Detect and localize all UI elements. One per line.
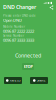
staticText: RATE US <box>10 79 20 82</box>
button[interactable]: SHARE <box>30 77 48 84</box>
staticText: Connected <box>15 52 41 59</box>
button[interactable]: RATE US <box>4 77 22 84</box>
staticText: Service Number <box>3 34 24 37</box>
staticText: Open DND <box>3 17 22 23</box>
staticText: Mobile Number <box>3 25 25 28</box>
staticText: Please enter DND code <box>3 14 36 17</box>
staticText: 0096 87 2222 2222 <box>3 28 34 34</box>
staticText: STOP <box>23 64 32 69</box>
button[interactable]: Share <box>49 5 54 10</box>
staticText: 0096 87 3333 3333 <box>3 37 34 43</box>
staticText: SHARE <box>37 79 45 82</box>
staticText: DND Changer <box>3 3 36 11</box>
button[interactable]: STOP <box>22 63 34 70</box>
